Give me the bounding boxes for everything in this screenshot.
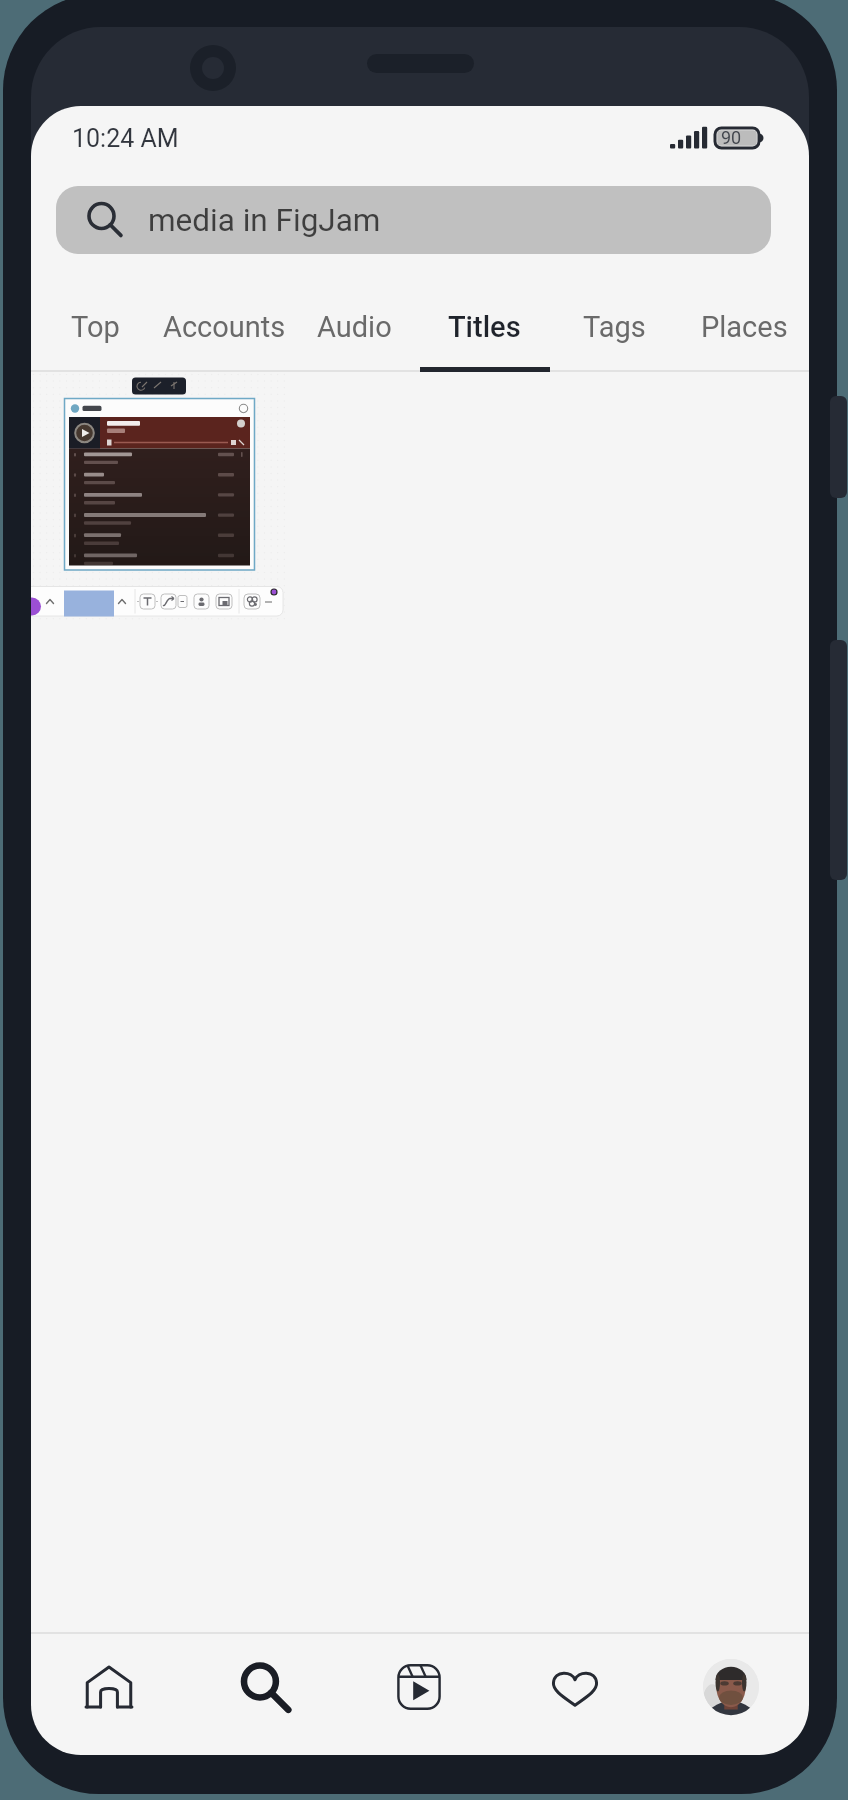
button[interactable]: Reels [341,1634,497,1755]
staticText: Top [71,310,120,344]
staticText: Audio [317,310,392,344]
button[interactable]: Activity [497,1634,653,1755]
button[interactable]: Titles [419,254,549,372]
button[interactable]: Search result: media in FigJam [31,372,286,625]
button[interactable]: Profile [653,1634,809,1755]
staticText: media in FigJam [148,202,381,239]
staticText: 90 [721,127,742,148]
button[interactable]: Home [31,1634,186,1755]
staticText: Tags [583,310,646,344]
staticText: Titles [448,310,521,344]
staticText: Places [701,310,788,344]
button[interactable]: Accounts [160,254,289,372]
button[interactable]: media in FigJam [56,186,771,254]
button[interactable]: Search [186,1634,341,1755]
button[interactable]: Audio [289,254,419,372]
staticText: 10:24 AM [72,124,179,153]
button[interactable]: Top [31,254,160,372]
button[interactable]: Tags [549,254,679,372]
button[interactable]: Places [679,254,809,372]
staticText: Accounts [163,310,286,344]
